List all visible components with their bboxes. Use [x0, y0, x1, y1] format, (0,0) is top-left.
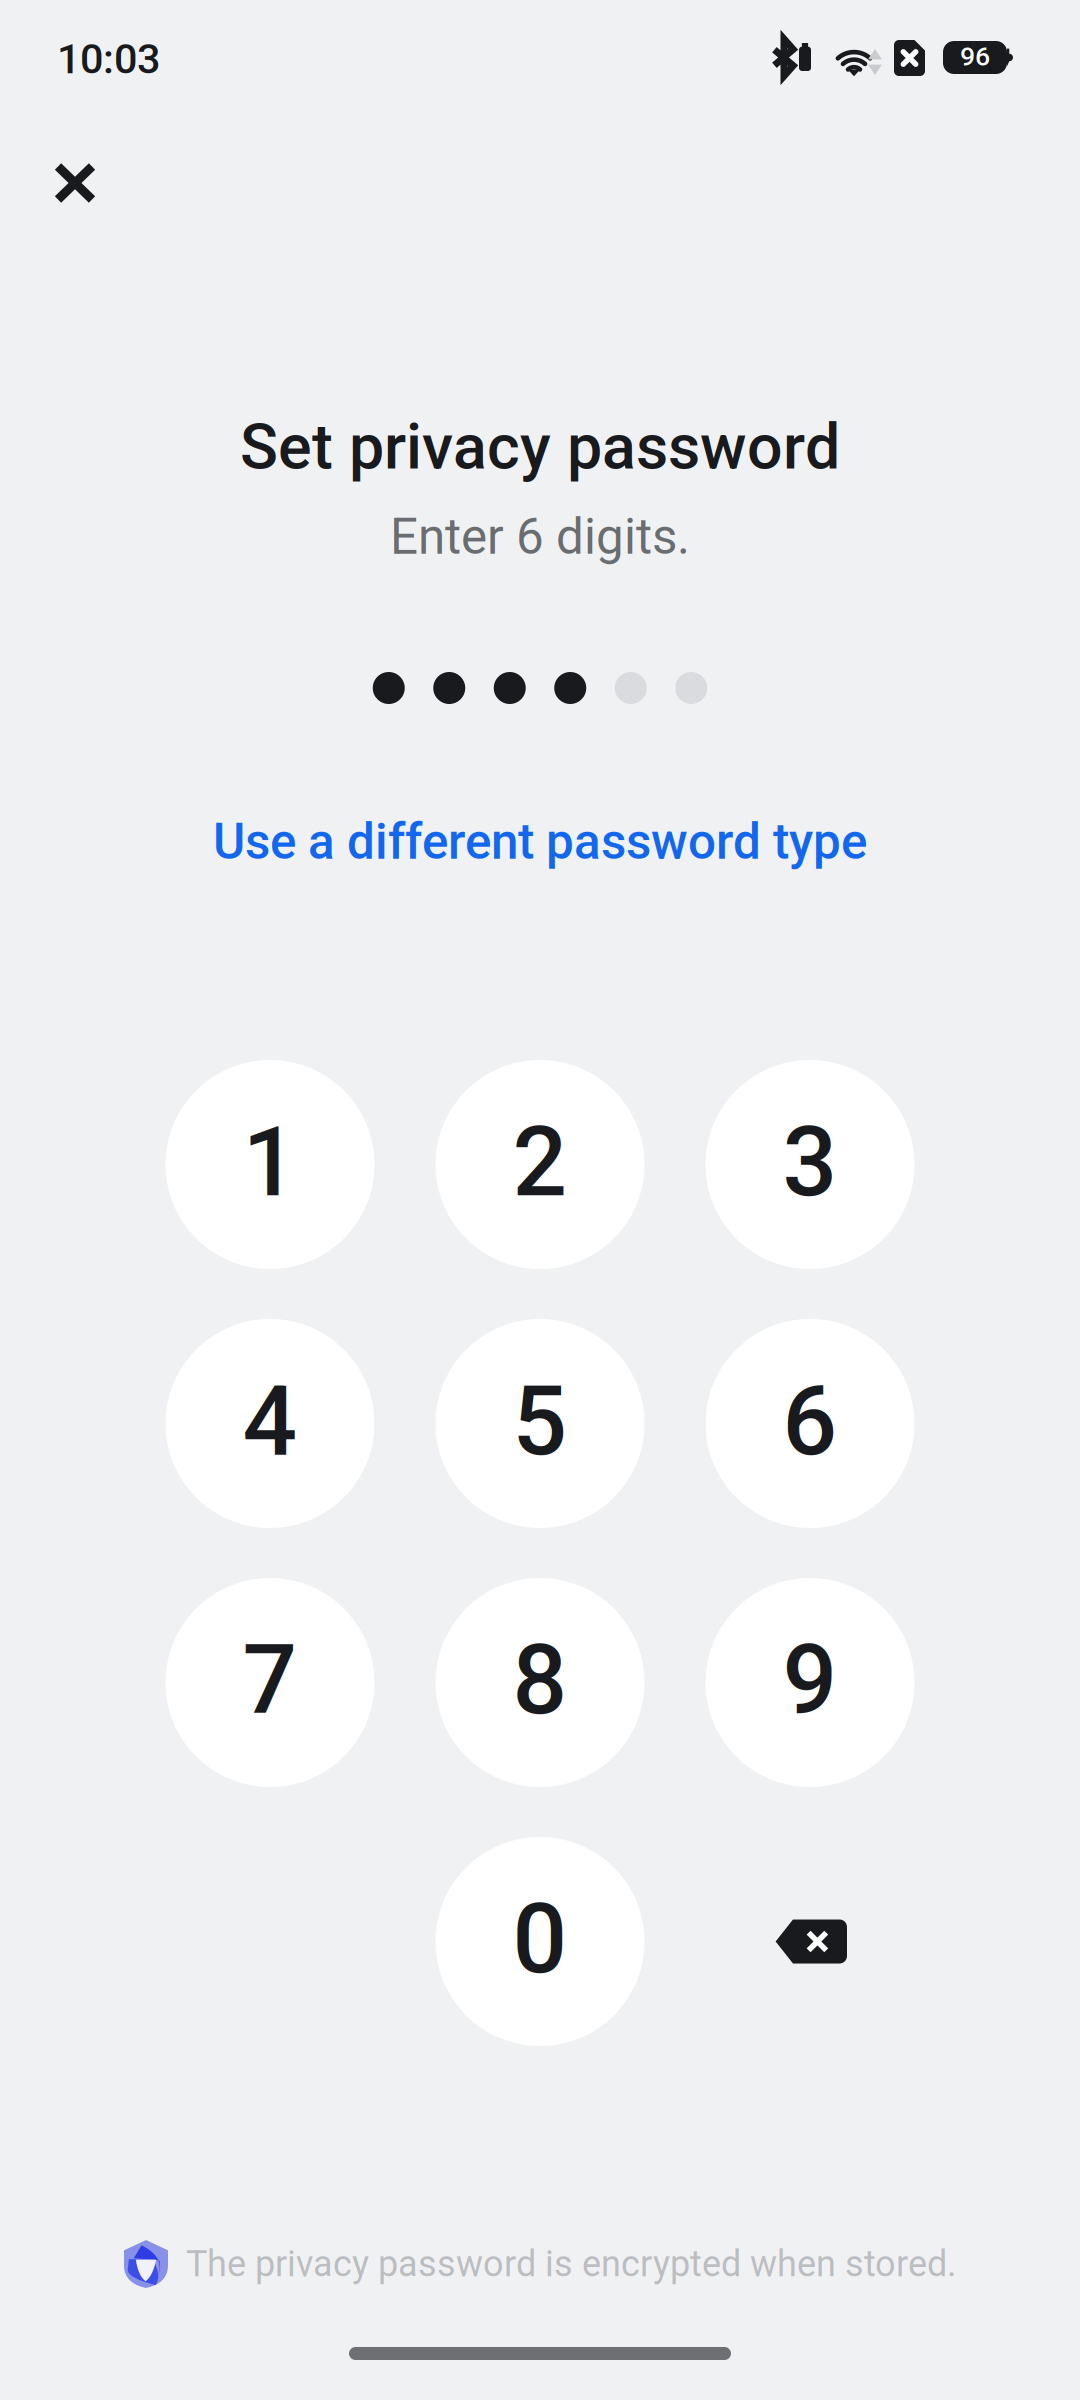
staticText: 8 [512, 1624, 567, 1737]
staticText: 3 [782, 1106, 837, 1219]
button[interactable]: 9 [705, 1578, 914, 1787]
staticText: 9 [782, 1624, 837, 1737]
button[interactable]: 4 [165, 1319, 374, 1528]
button[interactable]: 3 [705, 1060, 914, 1269]
staticText: 96 [960, 41, 990, 72]
button[interactable]: 7 [165, 1578, 374, 1787]
staticText: 10:03 [57, 35, 160, 83]
staticText: 5 [512, 1365, 567, 1478]
staticText: 7 [242, 1624, 297, 1737]
staticText: The privacy password is encrypted when s… [186, 2243, 956, 2285]
button[interactable]: Close [24, 132, 126, 234]
staticText: 4 [242, 1365, 297, 1478]
staticText: 1 [242, 1106, 297, 1219]
button[interactable]: 1 [165, 1060, 374, 1269]
staticText: 6 [782, 1365, 837, 1478]
staticText: 2 [512, 1106, 567, 1219]
staticText: Enter 6 digits. [390, 508, 690, 566]
button[interactable]: Use a different password type [0, 806, 1080, 878]
button[interactable]: 6 [705, 1319, 914, 1528]
button[interactable]: 8 [435, 1578, 644, 1787]
staticText: 0 [512, 1883, 567, 1996]
button[interactable]: Delete [705, 1837, 914, 2046]
staticText: Use a different password type [213, 813, 867, 871]
button[interactable]: 0 [435, 1837, 644, 2046]
button[interactable]: 2 [435, 1060, 644, 1269]
staticText: Set privacy password [240, 410, 840, 484]
button[interactable]: 5 [435, 1319, 644, 1528]
